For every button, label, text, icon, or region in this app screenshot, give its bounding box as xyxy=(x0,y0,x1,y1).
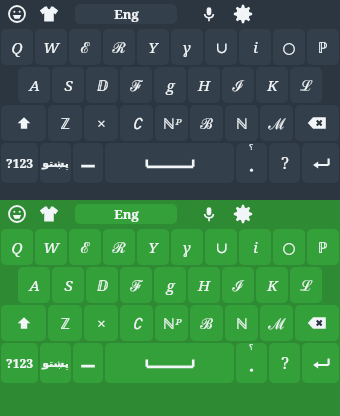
button[interactable]: ℛ xyxy=(103,229,135,265)
button[interactable]: پښتو xyxy=(40,343,71,383)
button[interactable]: ℕ xyxy=(225,105,258,141)
staticText: ℰ xyxy=(80,37,90,57)
button[interactable]: Backspace xyxy=(295,105,339,141)
button[interactable]: × xyxy=(84,305,118,341)
button[interactable]: g xyxy=(154,267,186,303)
button[interactable]: Υ xyxy=(137,229,169,265)
button[interactable]: A xyxy=(18,267,50,303)
staticText: ?123 xyxy=(6,155,33,171)
button[interactable]: ɣ xyxy=(171,29,203,65)
button[interactable]: Enter xyxy=(302,143,339,183)
staticText: ? xyxy=(281,352,289,374)
staticText: ℕᴾ xyxy=(163,113,181,133)
button[interactable]: ℤ xyxy=(48,305,82,341)
button[interactable]: W xyxy=(35,29,67,65)
button[interactable]: ? xyxy=(269,343,300,383)
button[interactable]: ؟ xyxy=(236,343,267,383)
button[interactable]: A xyxy=(18,67,50,103)
button[interactable]: ?123 xyxy=(1,343,38,383)
button[interactable]: W xyxy=(35,229,67,265)
staticText: ℛ xyxy=(112,37,126,57)
button[interactable]: ℙ xyxy=(307,229,339,265)
button[interactable]: Underscore xyxy=(73,343,103,383)
button[interactable]: g xyxy=(154,67,186,103)
button[interactable]: ℳ xyxy=(260,305,293,341)
button[interactable]: ℰ xyxy=(69,229,101,265)
button[interactable]: ℙ xyxy=(307,29,339,65)
button[interactable]: Settings xyxy=(231,2,255,26)
button[interactable]: Shift xyxy=(1,305,46,341)
button[interactable]: ℳ xyxy=(260,105,293,141)
staticText: W xyxy=(43,37,59,57)
button[interactable]: ℕᴾ xyxy=(155,105,188,141)
button[interactable]: ℒ xyxy=(290,267,322,303)
button[interactable]: H xyxy=(188,267,220,303)
staticText: Eng xyxy=(114,205,139,223)
button[interactable]: Eng xyxy=(75,4,177,24)
button[interactable]: ℐ xyxy=(222,67,254,103)
button[interactable]: ⅅ xyxy=(86,267,118,303)
button[interactable]: H xyxy=(188,67,220,103)
button[interactable]: Q xyxy=(1,29,33,65)
staticText: Eng xyxy=(114,5,139,23)
button[interactable]: ℕᴾ xyxy=(155,305,188,341)
button[interactable]: ℰ xyxy=(69,29,101,65)
button[interactable]: ɣ xyxy=(171,229,203,265)
button[interactable]: ∪ xyxy=(205,29,237,65)
button[interactable]: ℒ xyxy=(290,67,322,103)
button[interactable]: ℱ xyxy=(120,267,152,303)
staticText: پښتو xyxy=(42,157,69,170)
button[interactable]: Settings xyxy=(231,202,255,226)
button[interactable]: ? xyxy=(269,143,300,183)
button[interactable]: Emoji xyxy=(5,2,29,26)
staticText: ℕ xyxy=(236,313,248,333)
staticText: ℬ xyxy=(200,113,213,133)
staticText: H xyxy=(198,75,210,95)
staticText: ⅅ xyxy=(97,75,108,95)
staticText: ○ xyxy=(282,39,296,56)
staticText: × xyxy=(97,113,106,133)
button[interactable]: ?123 xyxy=(1,143,38,183)
button[interactable]: i xyxy=(239,29,271,65)
button[interactable]: ℬ xyxy=(190,105,223,141)
button[interactable]: ℐ xyxy=(222,267,254,303)
button[interactable]: × xyxy=(84,105,118,141)
button[interactable]: پښتو xyxy=(40,143,71,183)
button[interactable]: Υ xyxy=(137,29,169,65)
button[interactable]: ∪ xyxy=(205,229,237,265)
button[interactable]: ○ xyxy=(273,29,305,65)
button[interactable]: K xyxy=(256,67,288,103)
button[interactable]: Voice input xyxy=(197,2,221,26)
button[interactable]: Themes xyxy=(37,2,61,26)
button[interactable]: ℛ xyxy=(103,29,135,65)
button[interactable]: Eng xyxy=(75,204,177,224)
button[interactable]: ℤ xyxy=(48,105,82,141)
button[interactable]: ℬ xyxy=(190,305,223,341)
button[interactable]: ○ xyxy=(273,229,305,265)
button[interactable]: Space xyxy=(105,143,234,183)
button[interactable]: Backspace xyxy=(295,305,339,341)
button[interactable]: Space xyxy=(105,343,234,383)
staticText: g xyxy=(166,275,175,295)
button[interactable]: Q xyxy=(1,229,33,265)
staticText: ℳ xyxy=(268,313,286,333)
button[interactable]: ∁ xyxy=(120,305,153,341)
button[interactable]: Shift xyxy=(1,105,46,141)
button[interactable]: S xyxy=(52,67,84,103)
button[interactable]: ⅅ xyxy=(86,67,118,103)
staticText: ℐ xyxy=(232,75,244,95)
staticText: ؟ xyxy=(249,143,254,152)
button[interactable]: i xyxy=(239,229,271,265)
button[interactable]: Emoji xyxy=(5,202,29,226)
button[interactable]: Underscore xyxy=(73,143,103,183)
button[interactable]: K xyxy=(256,267,288,303)
button[interactable]: ℱ xyxy=(120,67,152,103)
button[interactable]: Enter xyxy=(302,343,339,383)
button[interactable]: ℕ xyxy=(225,305,258,341)
staticText: ℱ xyxy=(130,275,143,295)
button[interactable]: ∁ xyxy=(120,105,153,141)
button[interactable]: Voice input xyxy=(197,202,221,226)
button[interactable]: ؟ xyxy=(236,143,267,183)
button[interactable]: Themes xyxy=(37,202,61,226)
button[interactable]: S xyxy=(52,267,84,303)
